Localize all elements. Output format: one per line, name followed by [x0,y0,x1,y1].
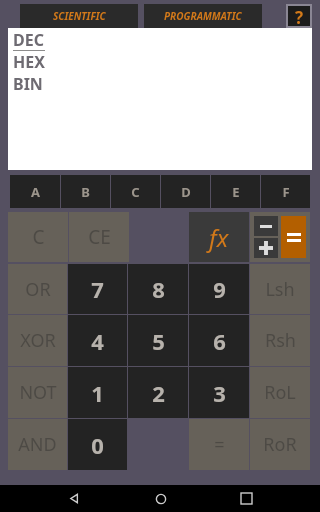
staticText: = [214,432,225,457]
button[interactable]: D [161,175,210,208]
staticText: 4 [91,326,104,356]
staticText: D [181,183,191,201]
staticText: 8 [152,274,165,304]
button[interactable]: RoR [250,419,310,470]
button[interactable]: CE [69,212,129,262]
staticText: RoL [264,380,296,405]
button[interactable]: B [61,175,110,208]
button[interactable]: 1 [68,367,127,418]
button[interactable]: fx [189,212,249,262]
button[interactable]: 0 [68,419,127,470]
button[interactable]: E [211,175,260,208]
staticText: BIN [13,73,43,95]
staticText: OR [25,277,51,302]
staticText: C [32,224,45,250]
button[interactable]: A [10,175,60,208]
staticText: 6 [213,326,226,356]
staticText: 0 [91,430,104,460]
button[interactable]: Minus [254,216,278,236]
button[interactable]: 9 [189,264,249,314]
button[interactable]: 8 [128,264,188,314]
staticText: ? [295,6,304,26]
button[interactable]: Lsh [250,264,310,314]
button[interactable]: RoL [250,367,310,418]
button[interactable]: 6 [189,315,249,366]
staticText: XOR [20,328,56,353]
staticText: DEC [13,29,44,51]
staticText: RoR [263,432,297,457]
staticText: 3 [213,378,226,408]
staticText: Rsh [265,328,296,353]
staticText: 7 [91,274,104,304]
button[interactable]: Rsh [250,315,310,366]
button[interactable]: XOR [8,315,67,366]
staticText: NOT [19,380,57,405]
button[interactable]: Equals [281,216,306,258]
staticText: 1 [91,378,104,408]
button[interactable]: PROGRAMMATIC [144,4,262,28]
staticText: 5 [152,326,165,356]
staticText: fx [209,221,229,254]
button[interactable]: 5 [128,315,188,366]
button[interactable]: 4 [68,315,127,366]
staticText: E [232,183,240,201]
button[interactable]: F [261,175,310,208]
staticText: CE [88,224,111,250]
button[interactable]: 3 [189,367,249,418]
staticText: PROGRAMMATIC [164,9,242,23]
staticText: Lsh [265,277,295,302]
button[interactable]: Plus [254,238,278,258]
staticText: SCIENTIFIC [53,9,106,23]
staticText: 2 [152,378,165,408]
staticText: A [31,183,40,201]
staticText: F [282,183,290,201]
staticText: B [81,183,90,201]
staticText: HEX [13,51,45,73]
button[interactable]: 7 [68,264,127,314]
button[interactable]: C [111,175,160,208]
button[interactable]: SCIENTIFIC [20,4,138,28]
staticText: 9 [213,274,226,304]
staticText: AND [18,432,57,457]
button[interactable]: NOT [8,367,67,418]
staticText: C [131,183,140,201]
button[interactable]: Help [288,6,310,26]
button[interactable]: AND [8,419,67,470]
button[interactable]: OR [8,264,67,314]
button[interactable]: 2 [128,367,188,418]
